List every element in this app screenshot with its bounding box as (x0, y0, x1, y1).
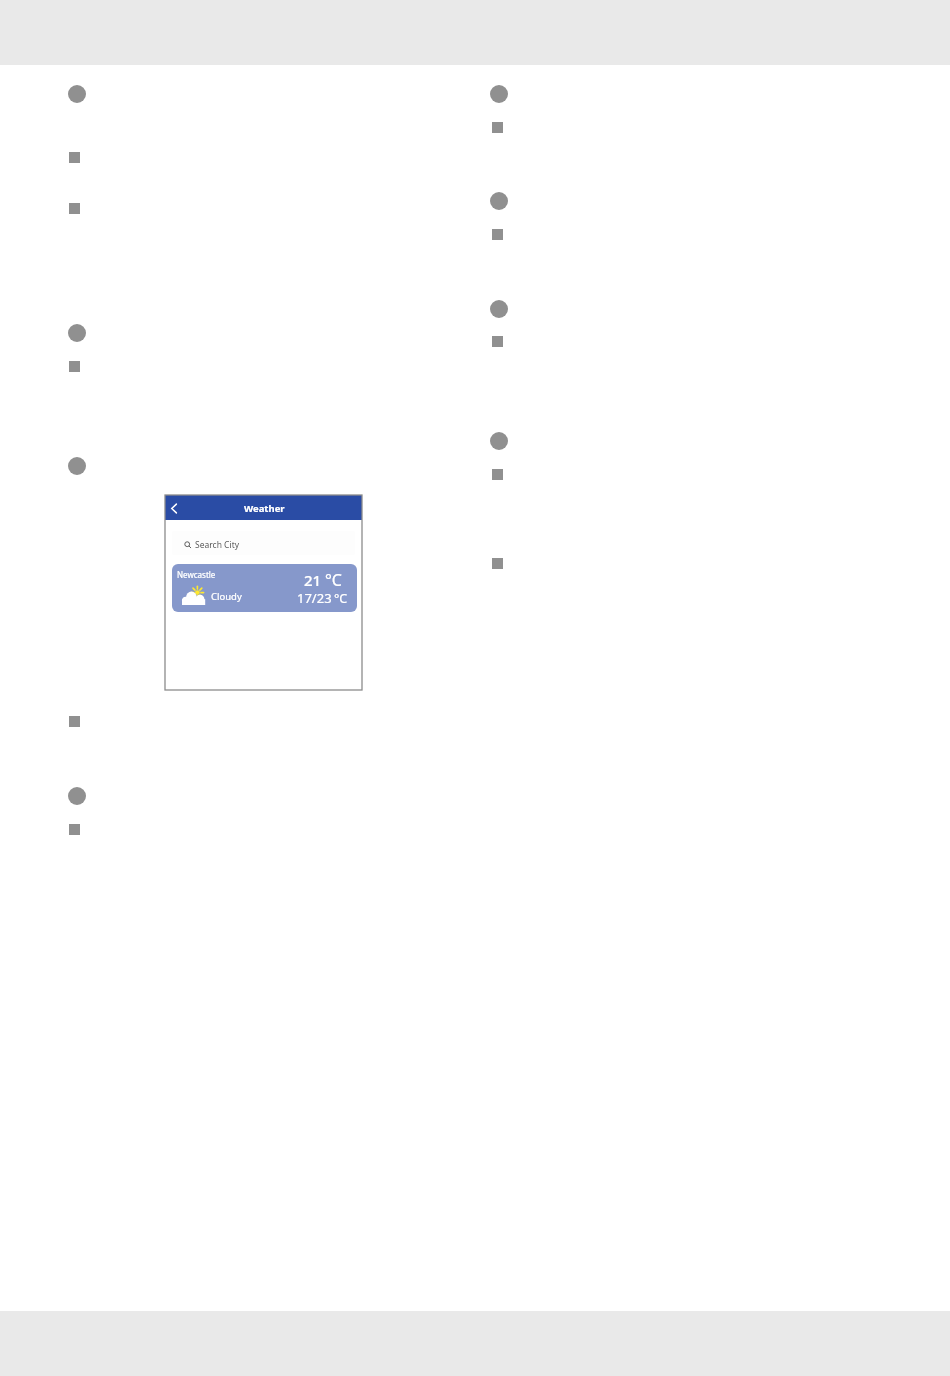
staticText: Newcastle (177, 569, 216, 580)
button[interactable]: Newcastle (172, 564, 357, 612)
button[interactable]: Back (165, 495, 362, 520)
staticText: 17/23 (297, 589, 332, 607)
staticText: Cloudy (211, 590, 242, 603)
button[interactable]: Back (165, 500, 182, 517)
staticText: 21 (304, 570, 322, 590)
staticText: Weather (244, 502, 285, 515)
staticText: °C (325, 569, 342, 591)
staticText: °C (334, 590, 348, 607)
button[interactable]: Search City (172, 531, 355, 555)
staticText: Search City (195, 539, 240, 551)
